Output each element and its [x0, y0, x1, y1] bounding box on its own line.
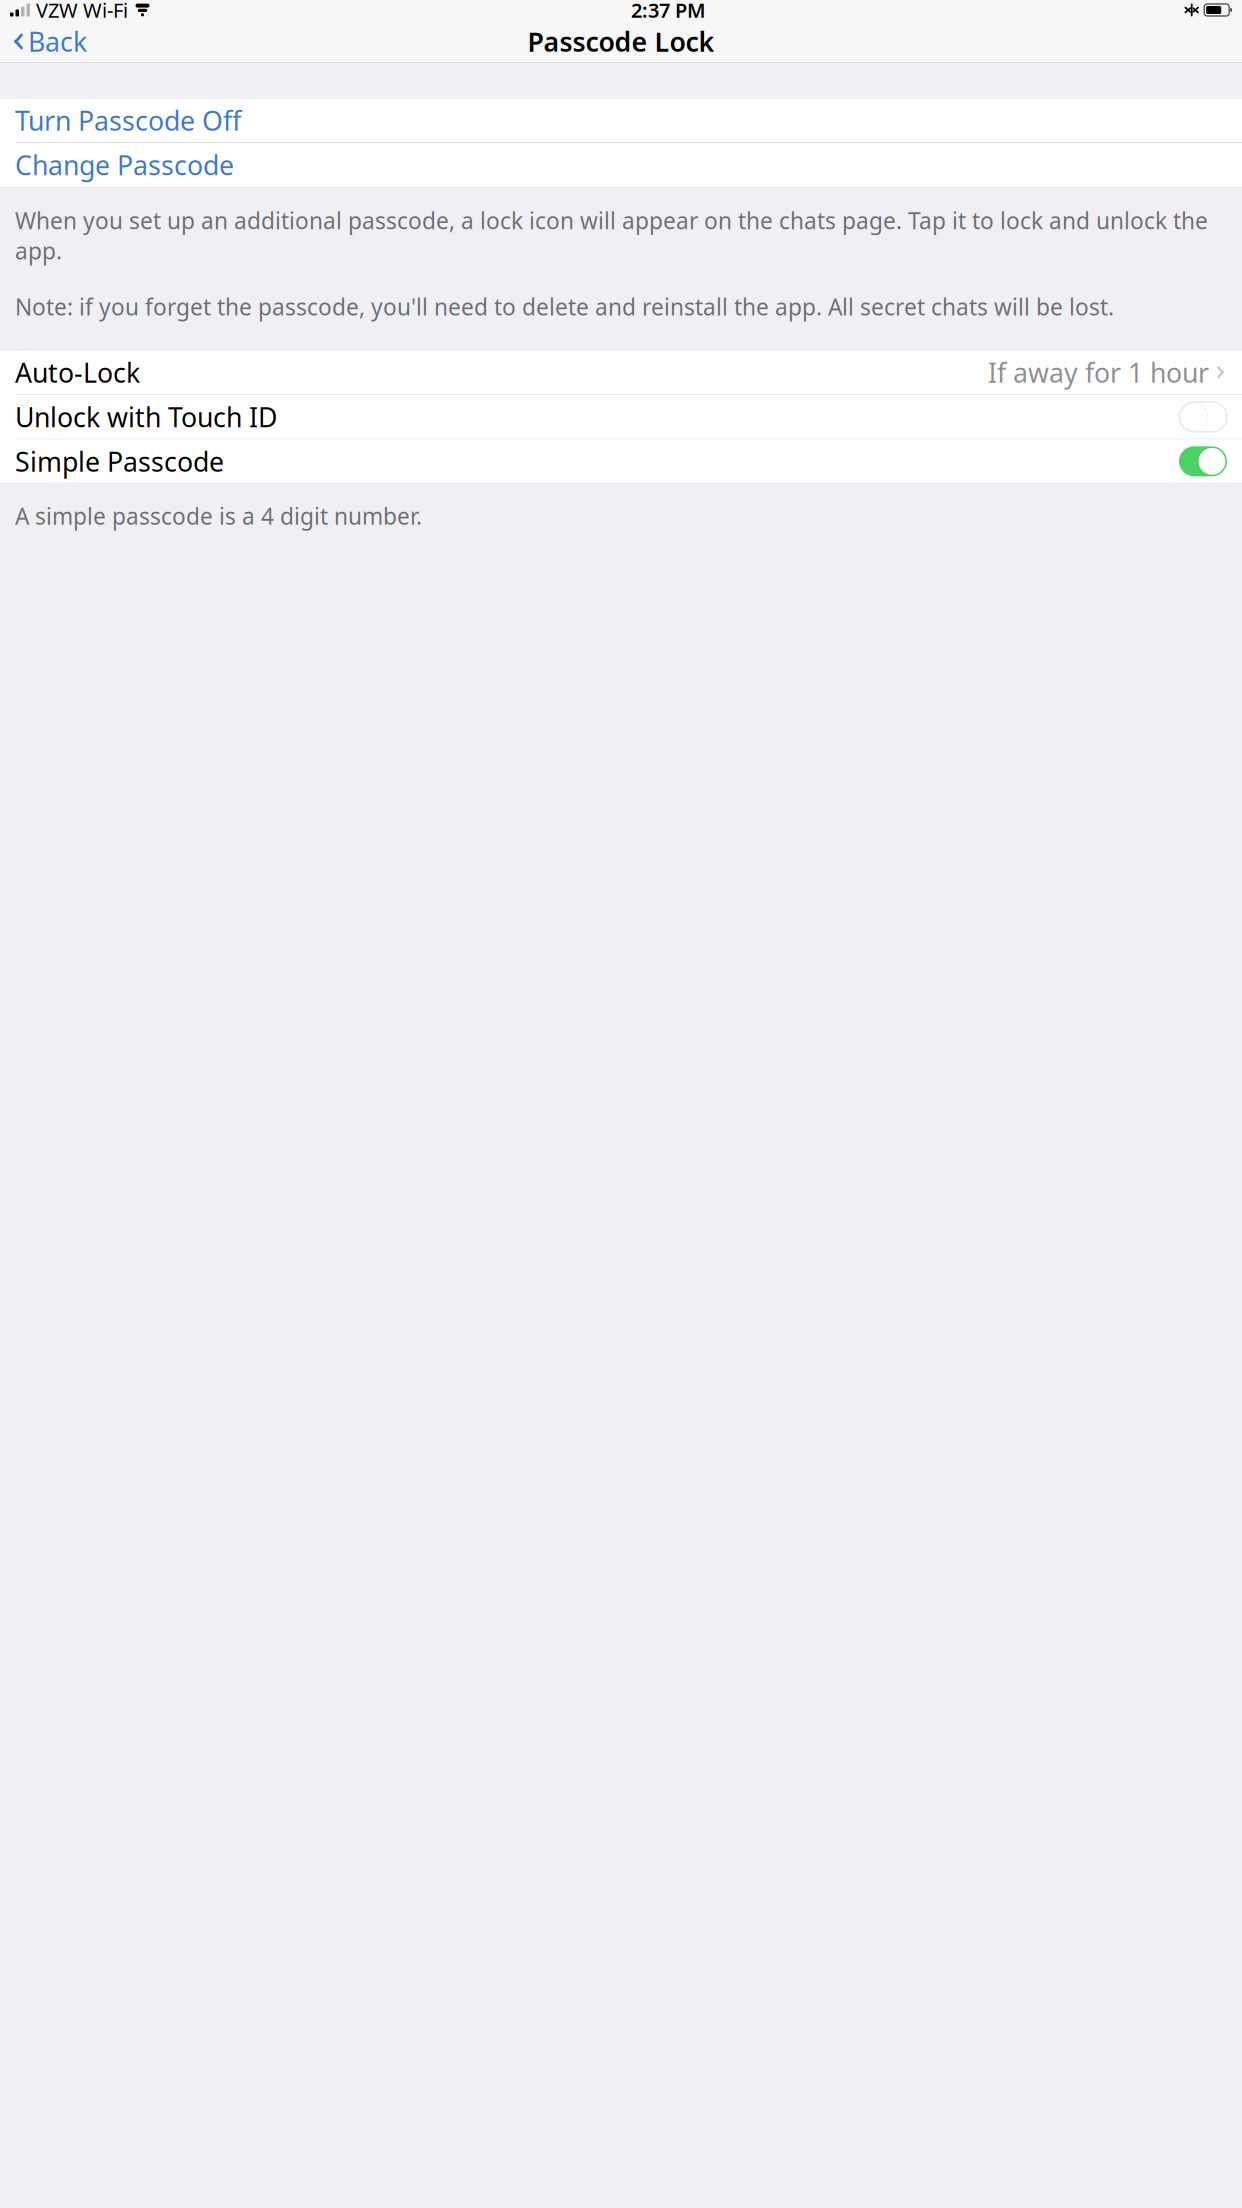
button[interactable]: Turn Passcode Off [0, 98, 1242, 143]
staticText: Back [28, 24, 87, 59]
staticText: Simple Passcode [15, 444, 224, 479]
staticText: VZW Wi-Fi [36, 0, 128, 23]
staticText: Change Passcode [15, 147, 234, 183]
staticText: A simple passcode is a 4 digit number. [15, 501, 422, 531]
button[interactable]: Simple Passcode [1179, 446, 1227, 476]
button[interactable]: Back [0, 18, 95, 65]
button[interactable]: Unlock with Touch ID [1179, 402, 1227, 432]
staticText: Note: if you forget the passcode, you'll… [15, 292, 1114, 322]
staticText: If away for 1 hour [988, 355, 1209, 390]
button[interactable]: Auto-Lock [0, 350, 1242, 394]
button[interactable]: Change Passcode [0, 143, 1242, 187]
staticText: Unlock with Touch ID [15, 399, 277, 434]
staticText: When you set up an additional passcode, … [15, 205, 1208, 266]
staticText: 2:37 PM [631, 0, 706, 23]
staticText: Turn Passcode Off [15, 103, 241, 138]
staticText: Passcode Lock [527, 24, 714, 59]
staticText: Auto-Lock [15, 355, 140, 390]
